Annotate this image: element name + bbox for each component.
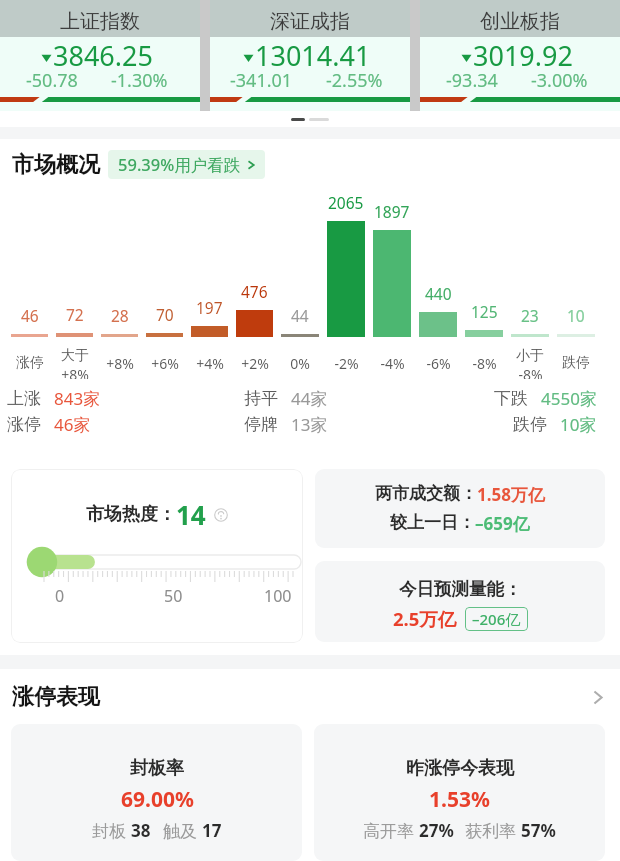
staticText: 封板 bbox=[92, 819, 131, 842]
staticText: 市场热度： bbox=[86, 503, 176, 526]
staticText: +2% bbox=[241, 354, 269, 373]
staticText: 23 bbox=[521, 305, 539, 326]
button[interactable]: 涨停表现 bbox=[0, 683, 620, 711]
staticText: 涨停 bbox=[16, 354, 44, 372]
staticText: 1897 bbox=[374, 201, 410, 222]
staticText: 44 bbox=[291, 305, 309, 326]
staticText: -8% bbox=[518, 365, 543, 379]
staticText: 125 bbox=[471, 301, 498, 322]
staticText: -93.34 bbox=[446, 68, 498, 93]
staticText: –659亿 bbox=[475, 512, 530, 535]
staticText: 小于 bbox=[516, 347, 544, 365]
button[interactable]: 创业板指 bbox=[420, 0, 620, 111]
staticText: -2.55% bbox=[326, 68, 383, 93]
staticText: 市场概况 bbox=[12, 151, 100, 179]
staticText: 停牌 bbox=[244, 414, 278, 435]
staticText: 涨停 bbox=[7, 414, 41, 435]
staticText: 476 bbox=[241, 281, 268, 302]
staticText: 下跌 bbox=[494, 388, 528, 409]
button[interactable]: 封板率 bbox=[11, 724, 302, 861]
staticText: 2065 bbox=[328, 192, 364, 213]
staticText: 72 bbox=[66, 304, 84, 325]
staticText: 843家 bbox=[54, 387, 101, 409]
staticText: 获利率 bbox=[465, 819, 521, 842]
button[interactable]: 今日预测量能： bbox=[315, 561, 605, 642]
staticText: 深证成指 bbox=[270, 9, 350, 34]
button[interactable]: 59.39%用户看跌 bbox=[108, 150, 265, 179]
staticText: 0 bbox=[55, 585, 65, 607]
staticText: -2% bbox=[334, 354, 359, 373]
staticText: 持平 bbox=[244, 388, 278, 409]
staticText: 57% bbox=[521, 819, 556, 842]
staticText: 上涨 bbox=[7, 388, 41, 409]
staticText: 46家 bbox=[54, 413, 91, 435]
staticText: 10家 bbox=[560, 413, 597, 435]
staticText: 大于 bbox=[61, 347, 89, 365]
staticText: 10 bbox=[567, 305, 585, 326]
staticText: -1.30% bbox=[111, 68, 168, 93]
other: More limit up bbox=[589, 689, 606, 706]
staticText: 3019.92 bbox=[473, 37, 573, 74]
staticText: 70 bbox=[156, 304, 174, 325]
staticText: +8% bbox=[61, 365, 89, 379]
staticText: 上证指数 bbox=[60, 9, 140, 34]
staticText: 59.39%用户看跌 bbox=[118, 153, 241, 176]
staticText: 封板率 bbox=[130, 757, 184, 780]
staticText: 4550家 bbox=[541, 387, 597, 409]
staticText: 创业板指 bbox=[480, 9, 560, 34]
staticText: +8% bbox=[106, 354, 134, 373]
staticText: +6% bbox=[151, 354, 179, 373]
staticText: 今日预测量能： bbox=[399, 578, 522, 600]
staticText: 17 bbox=[202, 819, 222, 842]
staticText: -8% bbox=[472, 354, 497, 373]
staticText: 2.5万亿 bbox=[393, 606, 457, 631]
staticText: 13014.41 bbox=[255, 37, 371, 74]
staticText: 28 bbox=[111, 305, 129, 326]
button[interactable]: 昨涨停今表现 bbox=[314, 724, 605, 861]
staticText: 跌停 bbox=[562, 354, 590, 372]
other: Help bbox=[214, 508, 228, 522]
staticText: 3846.25 bbox=[53, 37, 153, 74]
staticText: -3.00% bbox=[531, 68, 588, 93]
staticText: 跌停 bbox=[513, 414, 547, 435]
staticText: 100 bbox=[264, 585, 292, 607]
staticText: 0% bbox=[290, 354, 310, 373]
button[interactable]: 两市成交额： bbox=[315, 469, 605, 548]
staticText: -4% bbox=[380, 354, 405, 373]
staticText: -341.01 bbox=[230, 68, 293, 93]
button[interactable]: 市场热度： bbox=[11, 469, 303, 643]
staticText: –206亿 bbox=[472, 609, 521, 629]
staticText: 14 bbox=[176, 497, 206, 532]
staticText: 50 bbox=[164, 585, 183, 607]
staticText: +4% bbox=[196, 354, 224, 373]
staticText: 1.53% bbox=[429, 785, 490, 814]
staticText: 涨停表现 bbox=[12, 683, 100, 711]
staticText: 昨涨停今表现 bbox=[406, 757, 514, 780]
staticText: 197 bbox=[196, 297, 223, 318]
staticText: 13家 bbox=[291, 413, 328, 435]
staticText: 69.00% bbox=[121, 785, 194, 814]
staticText: 440 bbox=[425, 283, 452, 304]
staticText: 高开率 bbox=[363, 819, 419, 842]
button[interactable]: 上证指数 bbox=[0, 0, 200, 111]
staticText: 两市成交额： bbox=[375, 483, 477, 504]
staticText: 46 bbox=[21, 305, 39, 326]
staticText: 38 bbox=[131, 819, 151, 842]
staticText: 44家 bbox=[291, 387, 328, 409]
staticText: -50.78 bbox=[26, 68, 78, 93]
staticText: 1.58万亿 bbox=[477, 483, 545, 506]
button[interactable]: 深证成指 bbox=[210, 0, 410, 111]
staticText: 较上一日： bbox=[390, 512, 475, 533]
staticText: 27% bbox=[419, 819, 454, 842]
staticText: -6% bbox=[426, 354, 451, 373]
staticText: 触及 bbox=[163, 819, 202, 842]
